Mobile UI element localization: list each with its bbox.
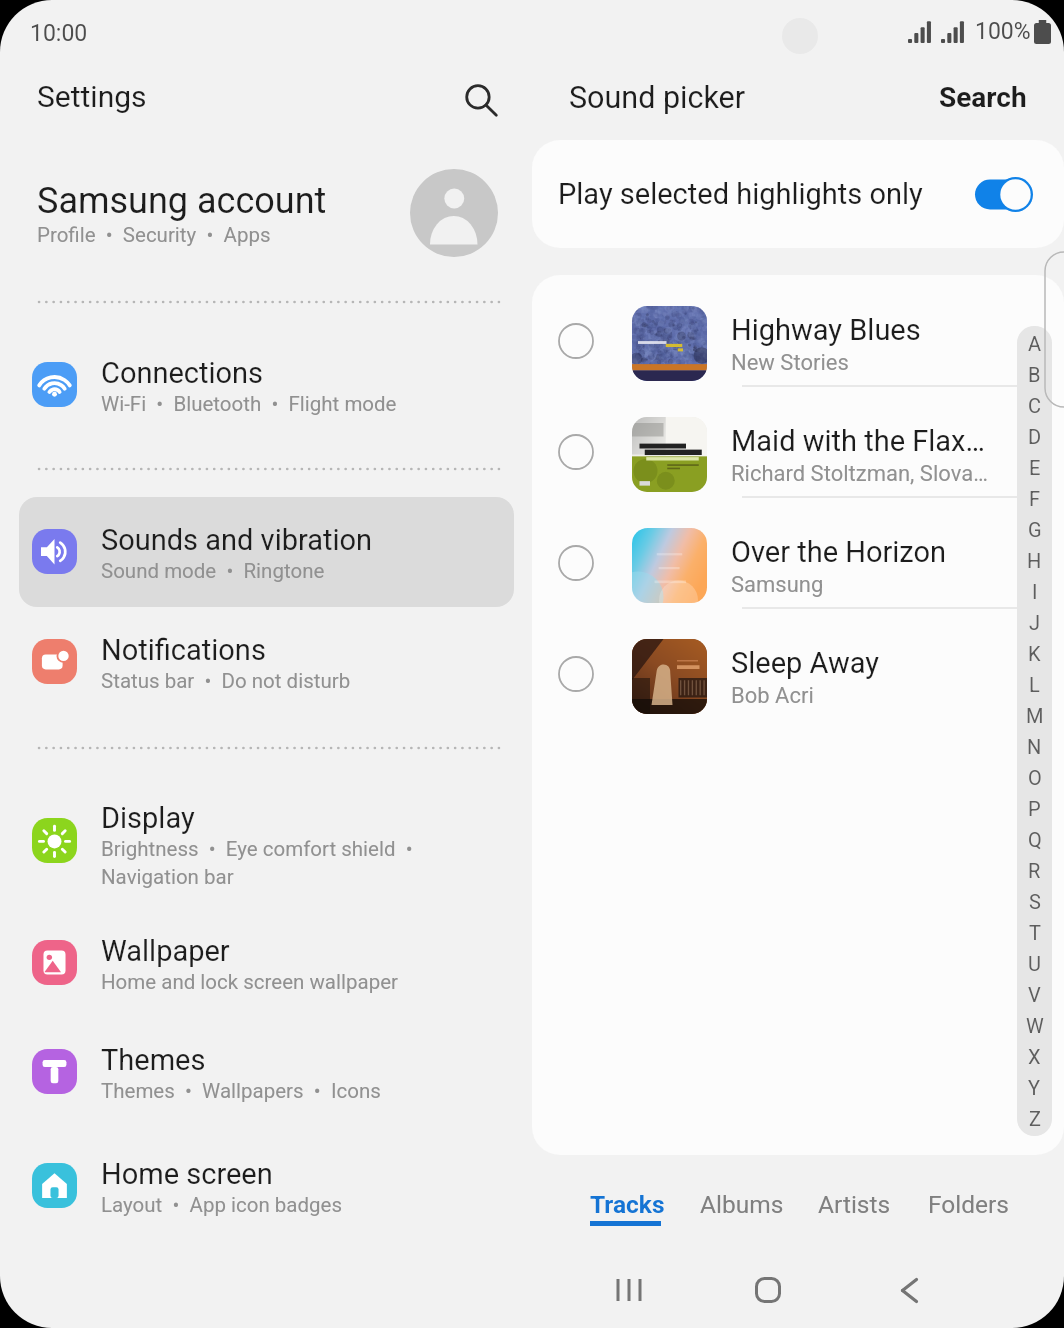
staticText: Themes • Wallpapers • Icons <box>101 1079 381 1103</box>
button[interactable]: Recents <box>595 1258 659 1322</box>
staticText: D <box>1028 425 1042 448</box>
staticText: S <box>1029 890 1041 913</box>
button[interactable]: Home screen <box>19 1131 514 1241</box>
staticText: G <box>1028 518 1042 541</box>
staticText: Artists <box>818 1190 891 1219</box>
staticText: Wallpaper <box>101 934 230 968</box>
button[interactable]: Notifications <box>19 607 514 717</box>
staticText: H <box>1027 549 1042 572</box>
button[interactable]: Connections <box>19 330 514 440</box>
button[interactable]: Search <box>917 68 1049 126</box>
staticText: Notifications <box>101 633 266 667</box>
staticText: Connections <box>101 356 264 390</box>
staticText: K <box>1028 642 1041 665</box>
staticText: Maid with the Flax… <box>731 424 985 458</box>
staticText: Richard Stoltzman, Slova… <box>731 461 988 487</box>
staticText: P <box>1028 797 1041 820</box>
staticText: Sleep Away <box>731 646 880 680</box>
staticText: L <box>1029 673 1040 696</box>
button[interactable]: Search <box>455 74 507 126</box>
button[interactable]: Over the Horizon <box>532 497 1064 608</box>
staticText: E <box>1029 456 1041 479</box>
staticText: U <box>1028 952 1041 975</box>
staticText: R <box>1028 859 1041 882</box>
staticText: Wi-Fi • Bluetooth • Flight mode <box>101 392 397 416</box>
staticText: Sounds and vibration <box>101 523 373 557</box>
button[interactable]: Alphabet index <box>1017 326 1052 1136</box>
button[interactable]: Sounds and vibration <box>19 497 514 607</box>
button[interactable]: Back <box>877 1258 941 1322</box>
staticText: Display <box>101 801 195 835</box>
button[interactable]: Albums <box>686 1186 798 1223</box>
staticText: Play selected highlights only <box>558 177 923 211</box>
button[interactable]: Artists <box>804 1186 905 1223</box>
staticText: Albums <box>700 1190 784 1219</box>
staticText: 10:00 <box>30 20 88 47</box>
staticText: Bob Acri <box>731 683 814 709</box>
staticText: Q <box>1028 828 1042 851</box>
staticText: A <box>1028 332 1042 355</box>
button[interactable]: Wallpaper <box>19 908 514 1018</box>
staticText: Highway Blues <box>731 313 921 347</box>
staticText: Status bar • Do not disturb <box>101 669 351 693</box>
staticText: Sound picker <box>569 80 746 116</box>
button[interactable]: Play selected highlights only <box>532 140 1064 248</box>
staticText: Settings <box>37 79 147 114</box>
staticText: C <box>1028 394 1042 417</box>
staticText: Y <box>1028 1076 1041 1099</box>
button[interactable]: Samsung account <box>0 163 532 263</box>
staticText: Samsung <box>731 572 824 598</box>
staticText: New Stories <box>731 350 849 376</box>
button[interactable]: Sleep Away <box>532 608 1064 719</box>
staticText: Tracks <box>590 1190 665 1219</box>
staticText: N <box>1027 735 1042 758</box>
staticText: Sound mode • Ringtone <box>101 559 325 583</box>
staticText: 100% <box>975 18 1031 45</box>
button[interactable]: Tracks <box>576 1186 679 1230</box>
button[interactable]: Folders <box>914 1186 1023 1223</box>
staticText: Home screen <box>101 1157 273 1191</box>
staticText: Profile • Security • Apps <box>37 223 271 247</box>
staticText: Themes <box>101 1043 206 1077</box>
button[interactable]: Maid with the Flax… <box>532 386 1064 497</box>
staticText: Samsung account <box>37 180 327 222</box>
staticText: J <box>1029 611 1041 634</box>
staticText: X <box>1028 1045 1041 1068</box>
staticText: Over the Horizon <box>731 535 947 569</box>
staticText: M <box>1026 704 1044 727</box>
staticText: F <box>1029 487 1041 510</box>
staticText: Home and lock screen wallpaper <box>101 970 398 994</box>
button[interactable]: Themes <box>19 1017 514 1127</box>
staticText: Search <box>939 81 1027 114</box>
staticText: I <box>1032 580 1038 603</box>
button[interactable]: Home <box>736 1258 800 1322</box>
staticText: Z <box>1029 1107 1041 1130</box>
staticText: Brightness • Eye comfort shield • Naviga… <box>101 837 413 889</box>
staticText: B <box>1028 363 1041 386</box>
staticText: V <box>1028 983 1041 1006</box>
staticText: O <box>1028 766 1042 789</box>
button[interactable]: Highway Blues <box>532 275 1064 386</box>
button[interactable]: Display <box>19 780 514 905</box>
staticText: W <box>1026 1014 1044 1037</box>
staticText: T <box>1029 921 1041 944</box>
staticText: Folders <box>928 1190 1009 1219</box>
staticText: Layout • App icon badges <box>101 1193 343 1217</box>
